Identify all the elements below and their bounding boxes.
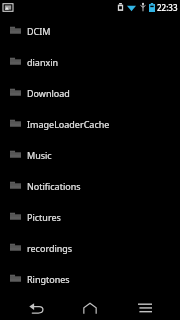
button[interactable]: Home [71, 295, 109, 320]
button[interactable]: recordings [0, 232, 180, 263]
button[interactable]: Ringtones [0, 263, 180, 294]
staticText: Notifications [27, 180, 81, 192]
button[interactable]: DCIM [0, 15, 180, 46]
staticText: dianxin [27, 56, 59, 68]
staticText: Music [27, 149, 52, 161]
staticText: recordings [27, 242, 73, 254]
button[interactable]: ImageLoaderCache [0, 108, 180, 139]
button[interactable]: Download [0, 77, 180, 108]
button[interactable]: Menu [126, 295, 164, 320]
staticText: 22:33 [157, 2, 178, 13]
staticText: Pictures [27, 211, 61, 223]
staticText: ImageLoaderCache [27, 118, 110, 130]
staticText: DCIM [27, 25, 51, 37]
button[interactable]: Back [17, 295, 55, 320]
staticText: Download [27, 87, 70, 99]
button[interactable]: dianxin [0, 46, 180, 77]
button[interactable]: Notifications [0, 170, 180, 201]
staticText: Ringtones [27, 273, 70, 285]
button[interactable]: Music [0, 139, 180, 170]
button[interactable]: Pictures [0, 201, 180, 232]
